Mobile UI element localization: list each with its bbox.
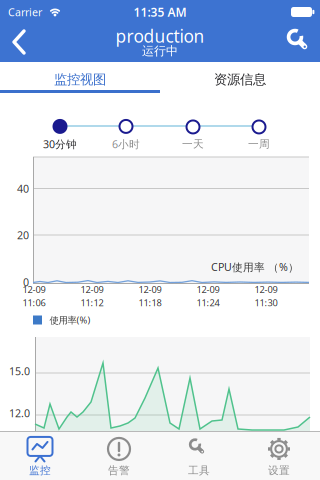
staticText: 40	[17, 181, 29, 196]
staticText: 监控	[29, 464, 51, 477]
button[interactable]: 资源信息	[160, 65, 320, 93]
button[interactable]: 30分钟	[28, 118, 92, 152]
staticText: 12-09	[80, 283, 103, 295]
staticText: 15.0	[9, 364, 30, 378]
staticText: 12-09	[196, 283, 219, 295]
staticText: 11:06	[22, 296, 45, 309]
staticText: 30分钟	[43, 137, 77, 151]
staticText: 11:30	[254, 296, 277, 309]
staticText: Carrier	[8, 5, 42, 19]
staticText: 一周	[248, 137, 270, 150]
staticText: 资源信息	[214, 71, 266, 88]
button[interactable]: 工具	[159, 432, 239, 480]
staticText: 设置	[268, 464, 290, 477]
staticText: 告警	[108, 464, 130, 477]
staticText: 12-09	[254, 283, 277, 295]
button[interactable]: 一周	[227, 118, 291, 152]
staticText: CPU使用率 （%）	[211, 260, 299, 274]
staticText: 11:24	[196, 296, 219, 309]
staticText: 12-09	[138, 283, 161, 295]
staticText: 11:18	[138, 296, 161, 309]
staticText: 运行中	[142, 44, 178, 58]
staticText: 11:12	[80, 296, 103, 309]
button[interactable]: 监控	[0, 432, 80, 480]
button[interactable]: 监控视图	[0, 65, 160, 93]
staticText: 12-09	[22, 283, 45, 295]
staticText: 监控视图	[54, 71, 106, 88]
staticText: 12.0	[9, 406, 30, 420]
staticText: 6小时	[112, 137, 140, 151]
staticText: production	[115, 24, 204, 47]
staticText: 一天	[182, 137, 204, 150]
staticText: 20	[17, 228, 29, 242]
button[interactable]: 设置	[239, 432, 319, 480]
button[interactable]: 告警	[79, 432, 159, 480]
button[interactable]: Tools	[279, 22, 319, 62]
staticText: 11:35 AM	[133, 4, 186, 20]
staticText: 0	[23, 275, 29, 289]
button[interactable]: Back	[0, 22, 44, 62]
staticText: 工具	[188, 464, 210, 477]
button[interactable]: 6小时	[94, 118, 158, 152]
button[interactable]: 一天	[161, 118, 225, 152]
staticText: 使用率(%)	[49, 314, 90, 326]
